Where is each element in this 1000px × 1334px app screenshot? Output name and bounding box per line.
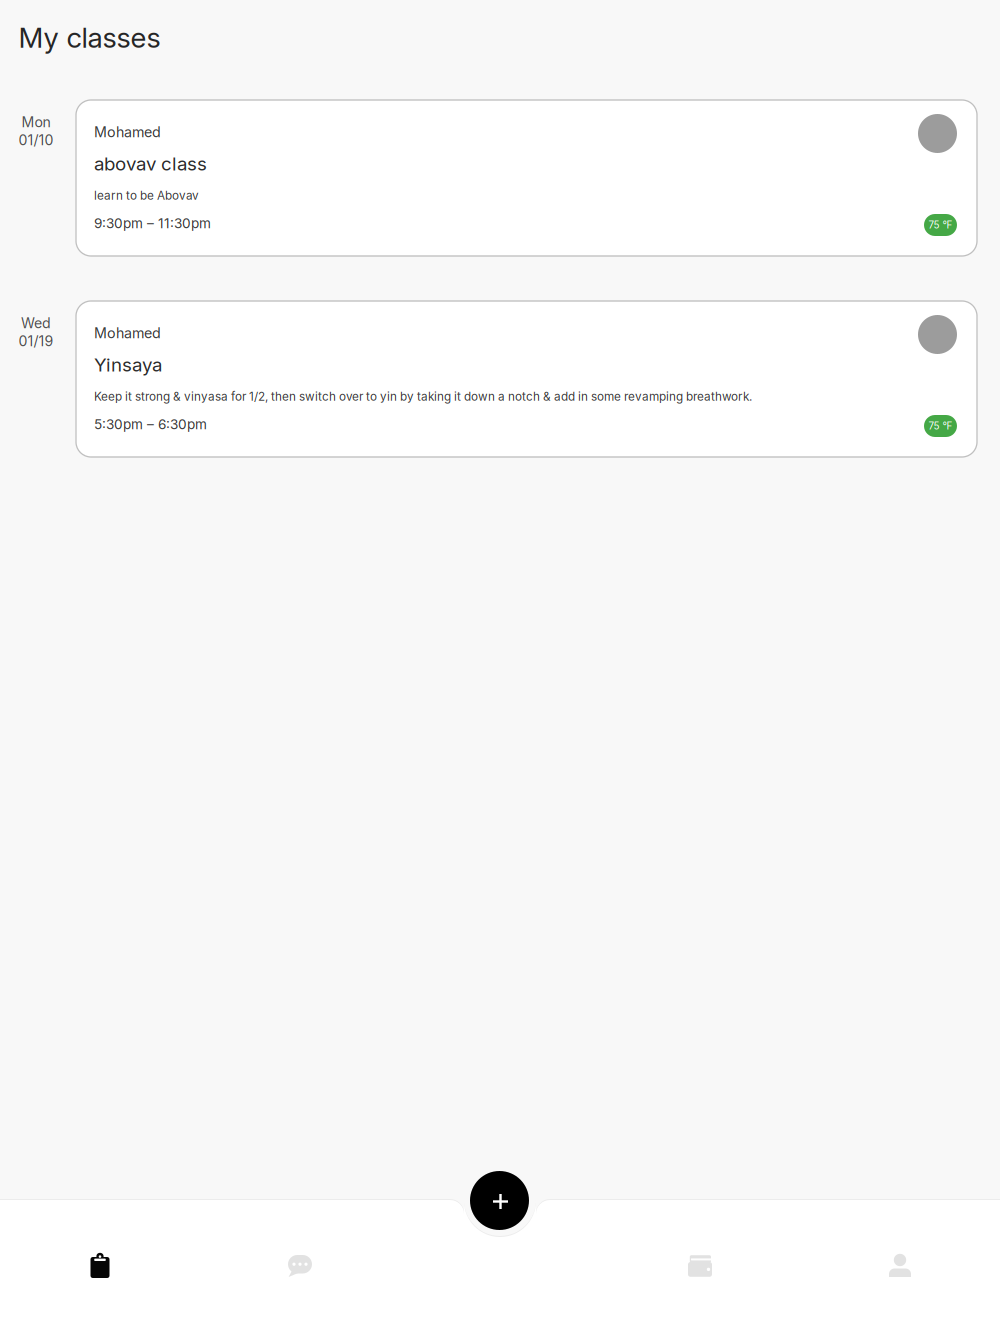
button[interactable]: Add class xyxy=(470,1171,529,1230)
button[interactable]: Wallet xyxy=(625,1200,775,1334)
staticText: Mohamed xyxy=(94,324,161,342)
staticText: 5:30pm – 6:30pm xyxy=(94,416,207,432)
staticText: Mohamed xyxy=(94,123,161,141)
staticText: learn to be Abovav xyxy=(94,188,199,203)
staticText: 01/19 xyxy=(18,332,53,349)
staticText: Yinsaya xyxy=(94,353,162,376)
staticText: 01/10 xyxy=(18,131,53,148)
staticText: Mon xyxy=(21,113,50,130)
staticText: abovav class xyxy=(94,152,207,175)
button[interactable]: Profile xyxy=(825,1200,975,1334)
button[interactable]: Mohamed xyxy=(76,301,977,457)
staticText: 75 °F xyxy=(928,420,952,432)
staticText: 9:30pm – 11:30pm xyxy=(94,215,211,231)
staticText: Wed xyxy=(21,314,51,331)
button[interactable]: My classes xyxy=(25,1200,175,1334)
button[interactable]: Mohamed xyxy=(76,100,977,256)
staticText: My classes xyxy=(18,20,160,54)
button[interactable]: Messages xyxy=(225,1200,375,1334)
staticText: Keep it strong & vinyasa for 1/2, then s… xyxy=(94,389,752,404)
staticText: 75 °F xyxy=(928,219,952,231)
